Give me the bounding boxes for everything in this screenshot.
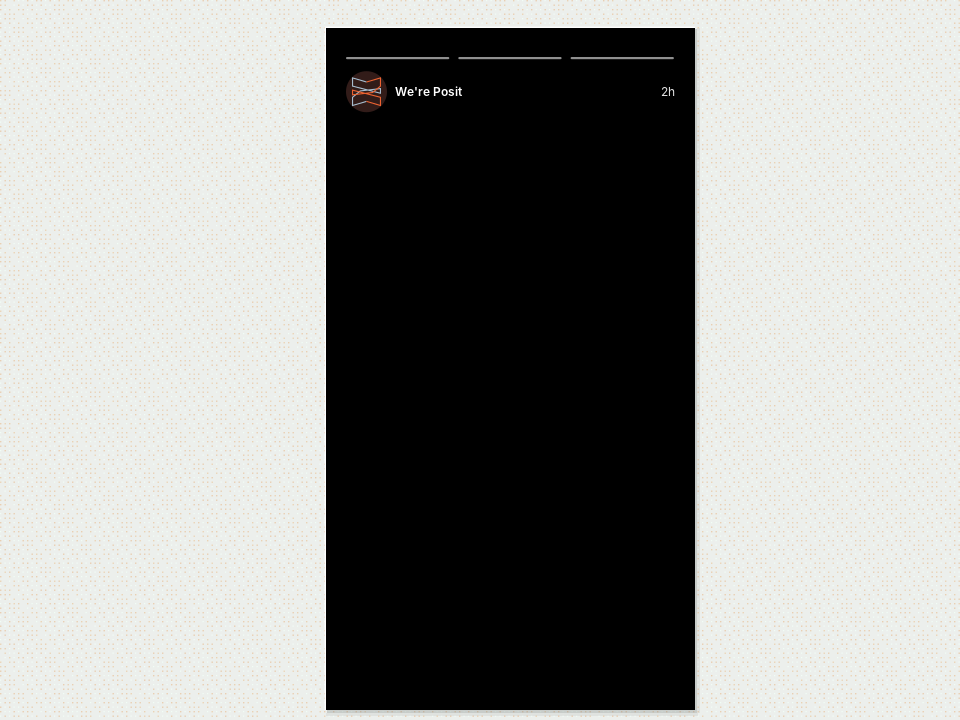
button[interactable]: Story 2 of 3 [458,57,562,59]
button[interactable]: We're Posit [346,71,675,112]
button[interactable]: Story 1 of 3 [346,57,449,59]
staticText: 2h [661,84,675,99]
button[interactable]: Next story [449,28,695,710]
staticText: We're Posit [395,84,462,99]
button[interactable]: Previous story [326,28,449,710]
button[interactable]: Story 3 of 3 [571,57,674,59]
